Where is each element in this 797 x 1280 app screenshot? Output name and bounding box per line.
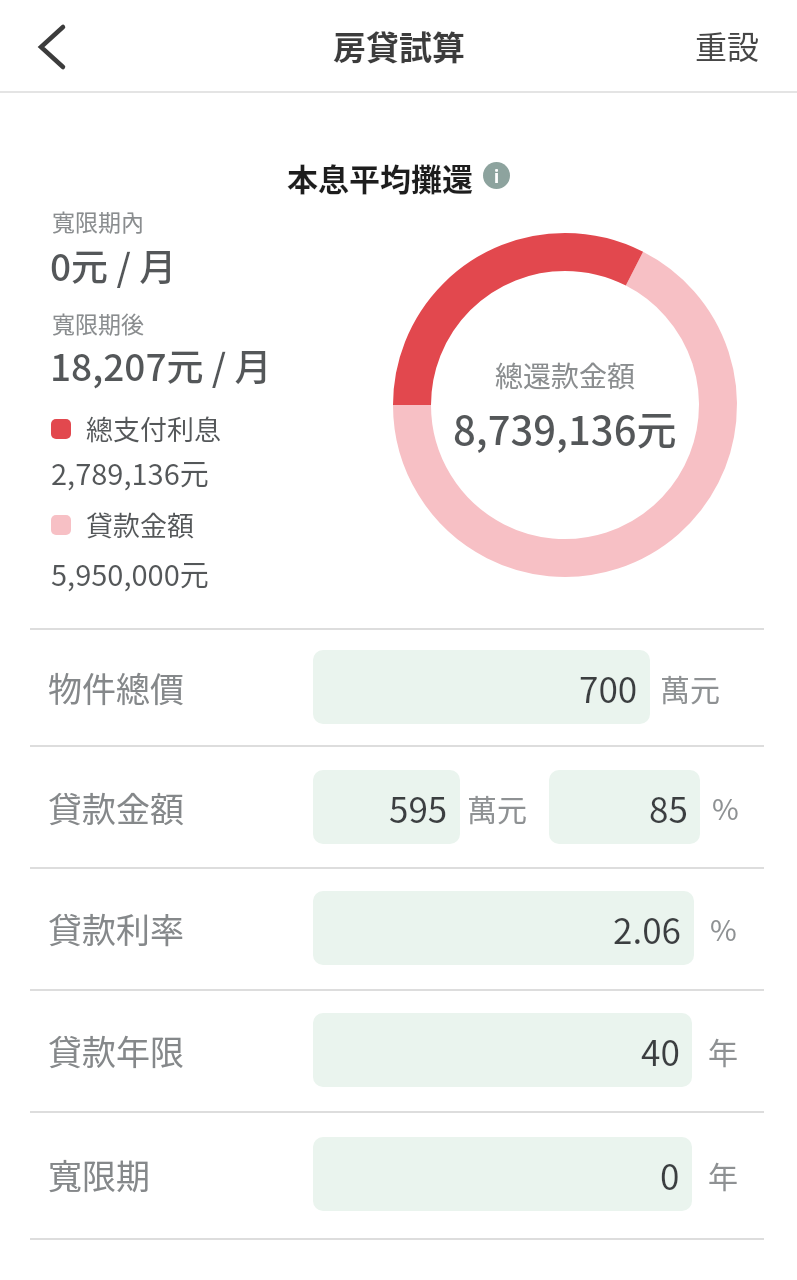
staticText: 595 bbox=[389, 782, 448, 833]
staticText: 寬限期後 bbox=[52, 306, 144, 339]
button[interactable]: i bbox=[483, 162, 510, 189]
staticText: 18,207元 / 月 bbox=[50, 338, 272, 392]
staticText: 萬元 bbox=[467, 786, 527, 829]
staticText: 年 bbox=[708, 1153, 738, 1196]
staticText: 貸款金額 bbox=[86, 505, 194, 544]
staticText: 0元 / 月 bbox=[50, 238, 177, 292]
staticText: 0 bbox=[660, 1149, 680, 1200]
staticText: 寬限期 bbox=[48, 1150, 150, 1199]
staticText: 寬限期內 bbox=[52, 204, 144, 237]
staticText: 房貸試算 bbox=[333, 22, 465, 70]
button[interactable]: 重設 bbox=[672, 0, 782, 90]
button[interactable]: 40 bbox=[313, 1013, 692, 1087]
staticText: 貸款利率 bbox=[48, 904, 184, 953]
staticText: 85 bbox=[649, 782, 688, 833]
staticText: 8,739,136元 bbox=[453, 399, 677, 457]
staticText: 貸款年限 bbox=[48, 1026, 184, 1075]
staticText: 總還款金額 bbox=[495, 355, 636, 395]
staticText: % bbox=[712, 786, 739, 828]
staticText: 700 bbox=[579, 662, 638, 713]
staticText: 萬元 bbox=[660, 666, 720, 709]
button[interactable] bbox=[24, 16, 80, 78]
staticText: i bbox=[494, 163, 500, 188]
button[interactable]: 700 bbox=[313, 650, 650, 724]
button[interactable]: 2.06 bbox=[313, 891, 694, 965]
staticText: % bbox=[710, 907, 737, 949]
button[interactable]: 85 bbox=[549, 770, 700, 844]
staticText: 本息平均攤還 bbox=[287, 155, 473, 195]
staticText: 40 bbox=[641, 1025, 680, 1076]
staticText: 總支付利息 bbox=[86, 409, 221, 448]
staticText: 貸款金額 bbox=[48, 783, 184, 832]
staticText: 物件總價 bbox=[48, 663, 184, 712]
button[interactable]: 595 bbox=[313, 770, 460, 844]
staticText: 2,789,136元 bbox=[51, 451, 209, 493]
staticText: 5,950,000元 bbox=[51, 552, 209, 594]
staticText: 重設 bbox=[695, 22, 760, 68]
staticText: 2.06 bbox=[613, 903, 682, 954]
button[interactable]: 0 bbox=[313, 1137, 692, 1211]
staticText: 年 bbox=[708, 1029, 738, 1072]
